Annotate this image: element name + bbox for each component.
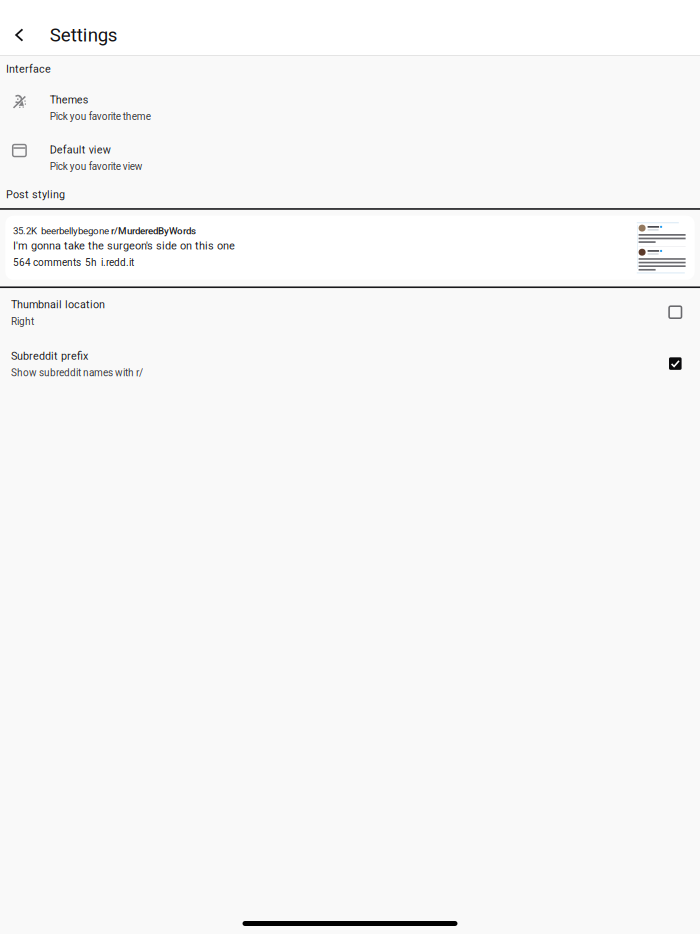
staticText: I'm gonna take the surgeon's side on thi… — [13, 239, 235, 252]
staticText: Right — [11, 316, 34, 327]
staticText: Default view — [50, 143, 111, 156]
button[interactable]: Themes — [0, 93, 700, 122]
staticText: Subreddit prefix — [11, 350, 88, 362]
staticText: r/MurderedByWords — [111, 225, 196, 237]
button[interactable]: Back — [0, 22, 39, 48]
button[interactable]: Default view — [0, 143, 700, 172]
staticText: Pick you favorite theme — [50, 111, 151, 122]
staticText: Thumbnail location — [11, 298, 105, 311]
staticText: Themes — [50, 93, 89, 106]
staticText: Pick you favorite view — [50, 161, 143, 172]
staticText: Post styling — [6, 188, 65, 201]
staticText: Show subreddit names with r/ — [11, 367, 143, 379]
staticText: 35.2K beerbellybegone — [13, 225, 111, 237]
staticText: 564 comments 5h i.redd.it — [13, 257, 134, 268]
staticText: Interface — [6, 63, 51, 75]
button[interactable]: Subreddit prefix — [0, 350, 700, 379]
button[interactable]: Thumbnail location — [0, 298, 700, 327]
staticText: Settings — [50, 24, 118, 46]
